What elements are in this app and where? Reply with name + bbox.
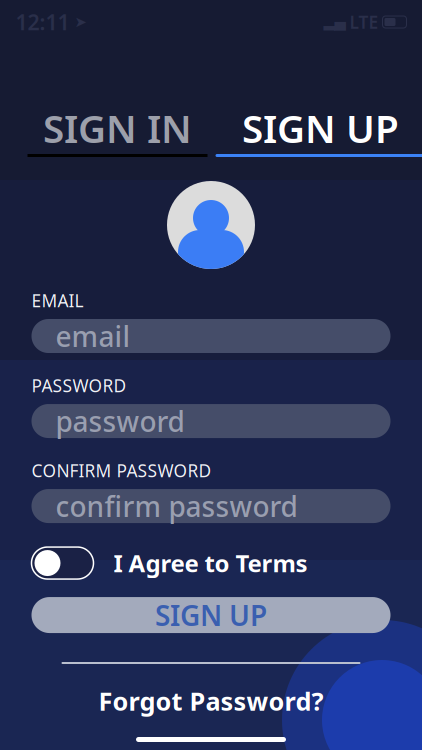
staticText: 12:11 [15,8,69,36]
staticText: SIGN UP [242,102,399,154]
staticText: SIGN IN [43,102,192,154]
staticText: EMAIL [31,289,83,312]
staticText: confirm password [55,487,297,525]
button[interactable]: Forgot Password? [0,676,422,726]
staticText: CONFIRM PASSWORD [31,459,211,482]
button[interactable]: SIGN IN [27,102,207,157]
staticText: LTE [349,10,378,33]
staticText: I Agree to Terms [113,547,307,579]
button[interactable]: SIGN UP [215,102,422,157]
staticText: SIGN UP [155,596,267,634]
staticText: ▂▄ [323,14,345,30]
staticText: PASSWORD [31,374,126,397]
button[interactable]: email [31,319,390,353]
button[interactable]: confirm password [31,489,390,523]
staticText: email [55,317,130,355]
button[interactable]: I Agree to Terms [31,547,93,579]
staticText: Forgot Password? [98,684,323,718]
button[interactable]: SIGN UP [31,597,390,633]
button[interactable]: password [31,404,390,438]
staticText: ➤ [69,14,86,30]
staticText: password [55,402,184,440]
